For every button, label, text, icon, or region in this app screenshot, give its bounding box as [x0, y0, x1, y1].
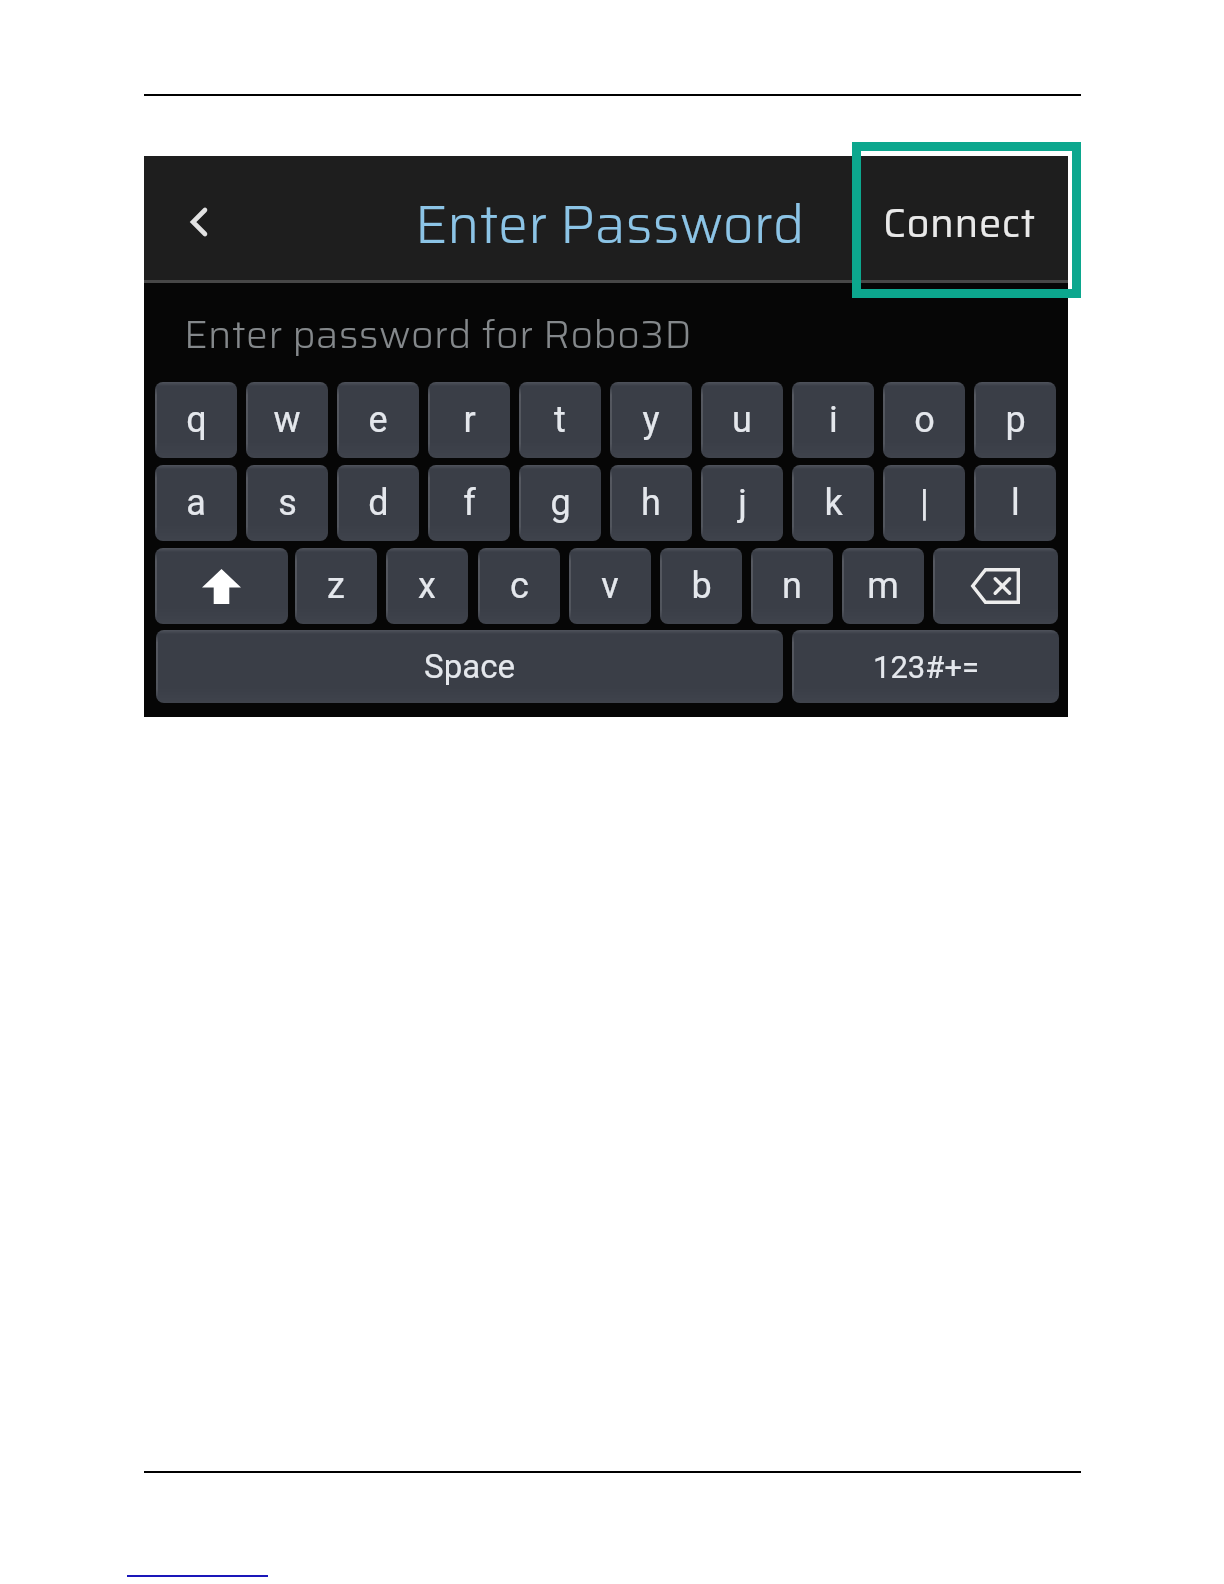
- button[interactable]: v: [569, 548, 651, 624]
- staticText: h: [641, 482, 661, 524]
- staticText: Enter password for Robo3D: [184, 304, 692, 365]
- staticText: t: [554, 399, 566, 441]
- button[interactable]: |: [883, 465, 965, 541]
- button[interactable]: p: [974, 382, 1056, 458]
- button[interactable]: Shift: [155, 548, 288, 624]
- staticText: u: [732, 399, 752, 441]
- button[interactable]: z: [295, 548, 377, 624]
- staticText: p: [1005, 399, 1026, 441]
- staticText: l: [1011, 482, 1020, 524]
- staticText: e: [368, 399, 388, 441]
- staticText: k: [824, 482, 843, 524]
- button[interactable]: h: [610, 465, 692, 541]
- staticText: f: [463, 482, 476, 524]
- staticText: Space: [424, 647, 515, 686]
- button[interactable]: Backspace: [933, 548, 1058, 624]
- button[interactable]: m: [842, 548, 924, 624]
- staticText: w: [273, 399, 301, 441]
- button[interactable]: Back: [149, 172, 249, 272]
- button[interactable]: q: [155, 382, 237, 458]
- staticText: |: [920, 482, 929, 524]
- button[interactable]: x: [386, 548, 468, 624]
- button[interactable]: g: [519, 465, 601, 541]
- staticText: Connect: [883, 192, 1036, 255]
- button[interactable]: o: [883, 382, 965, 458]
- button[interactable]: u: [701, 382, 783, 458]
- button[interactable]: r: [428, 382, 510, 458]
- button[interactable]: Connect: [852, 156, 1068, 280]
- button[interactable]: i: [792, 382, 874, 458]
- button[interactable]: d: [337, 465, 419, 541]
- staticText: a: [186, 482, 206, 524]
- staticText: Enter Password: [415, 182, 805, 266]
- staticText: z: [327, 565, 345, 607]
- staticText: 123#+=: [873, 649, 979, 685]
- staticText: i: [829, 399, 838, 441]
- staticText: x: [418, 565, 436, 607]
- staticText: c: [510, 565, 529, 607]
- staticText: y: [642, 399, 660, 441]
- button[interactable]: b: [660, 548, 742, 624]
- button[interactable]: k: [792, 465, 874, 541]
- staticText: v: [601, 565, 619, 607]
- staticText: g: [550, 482, 571, 524]
- staticText: m: [867, 565, 899, 607]
- button[interactable]: c: [478, 548, 560, 624]
- button[interactable]: w: [246, 382, 328, 458]
- staticText: n: [782, 565, 802, 607]
- button[interactable]: n: [751, 548, 833, 624]
- button[interactable]: 123#+=: [792, 630, 1059, 703]
- button[interactable]: a: [155, 465, 237, 541]
- staticText: q: [186, 399, 207, 441]
- staticText: d: [368, 482, 389, 524]
- button[interactable]: y: [610, 382, 692, 458]
- button[interactable]: f: [428, 465, 510, 541]
- staticText: j: [738, 482, 747, 524]
- button[interactable]: s: [246, 465, 328, 541]
- staticText: o: [914, 399, 935, 441]
- button[interactable]: Space: [156, 630, 783, 703]
- staticText: r: [463, 399, 476, 441]
- button[interactable]: e: [337, 382, 419, 458]
- staticText: b: [691, 565, 712, 607]
- staticText: s: [278, 482, 297, 524]
- button[interactable]: j: [701, 465, 783, 541]
- button[interactable]: l: [974, 465, 1056, 541]
- button[interactable]: t: [519, 382, 601, 458]
